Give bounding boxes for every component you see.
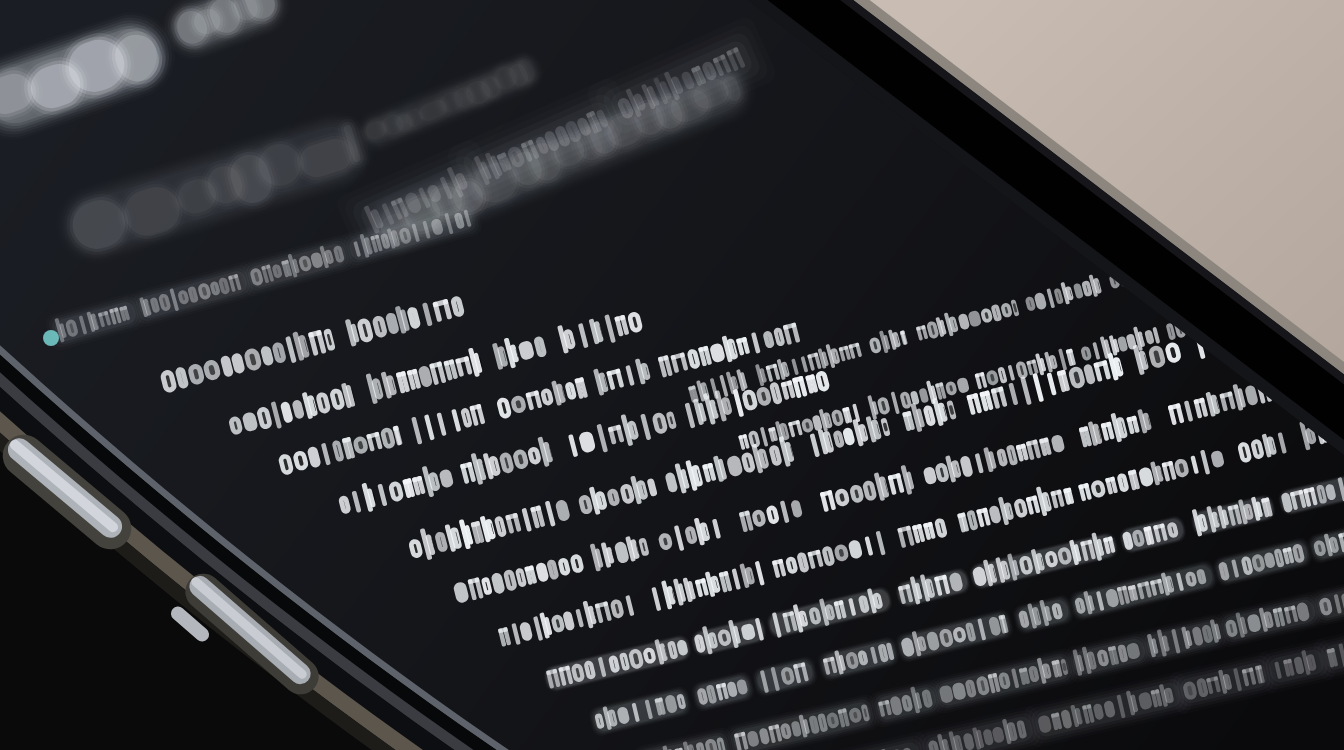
- button[interactable]: Phone screen photo: [0, 0, 1344, 750]
